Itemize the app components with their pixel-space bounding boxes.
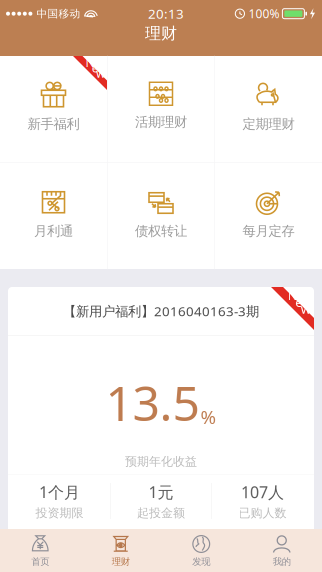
staticText: e <box>295 293 303 311</box>
staticText: 定期理财 <box>242 116 294 132</box>
button[interactable]: 理财 <box>80 529 161 572</box>
button[interactable]: 月利通 <box>0 163 107 269</box>
staticText: 中国移动 <box>36 7 80 20</box>
staticText: 月利通 <box>34 223 73 239</box>
staticText: 投资期限 <box>35 506 83 520</box>
staticText: 1元 <box>148 481 173 503</box>
staticText: 每月定存 <box>242 223 294 239</box>
staticText: e <box>92 60 99 76</box>
staticText: 债权转让 <box>135 223 187 239</box>
button[interactable]: 我的 <box>241 529 322 572</box>
staticText: 预期年化收益 <box>125 454 197 469</box>
staticText: 13.5 <box>105 370 199 434</box>
button[interactable]: 【新用户福利】2016040163-3期 <box>0 287 322 542</box>
staticText: 起投金额 <box>137 506 185 520</box>
staticText: 理财 <box>112 556 130 567</box>
staticText: 首页 <box>31 556 49 567</box>
staticText: 我的 <box>273 556 291 567</box>
button[interactable]: 首页 <box>0 529 80 572</box>
staticText: 107人 <box>241 481 284 503</box>
staticText: 已购人数 <box>238 506 286 520</box>
staticText: 20:13 <box>148 5 184 22</box>
staticText: 100% <box>248 6 279 22</box>
button[interactable]: 活期理财 <box>107 56 214 162</box>
staticText: 1个月 <box>39 481 80 503</box>
staticText: N <box>287 286 297 304</box>
button[interactable]: 定期理财 <box>215 56 322 162</box>
button[interactable]: 债权转让 <box>107 163 214 269</box>
staticText: 【新用户福利】2016040163-3期 <box>63 302 259 320</box>
staticText: 发现 <box>192 556 210 567</box>
staticText: 活期理财 <box>135 114 187 130</box>
button[interactable]: 发现 <box>161 529 241 572</box>
staticText: N <box>85 54 94 70</box>
button[interactable]: 每月定存 <box>215 163 322 269</box>
staticText: w <box>96 65 105 81</box>
staticText: 理财 <box>145 24 177 43</box>
staticText: % <box>200 404 216 429</box>
button[interactable]: 新手福利 <box>0 56 107 162</box>
staticText: w <box>301 300 311 317</box>
staticText: 新手福利 <box>27 116 79 132</box>
